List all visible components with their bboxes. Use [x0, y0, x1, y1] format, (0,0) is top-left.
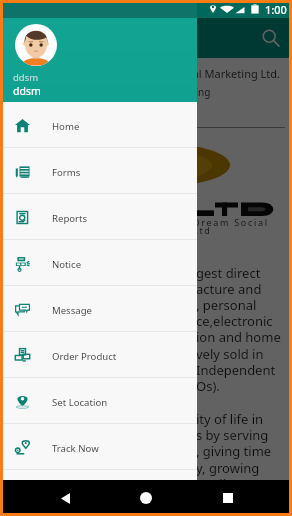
button[interactable]: Message: [0, 286, 197, 331]
button[interactable]: Track Now: [0, 424, 197, 469]
button[interactable]: Home: [0, 102, 197, 147]
staticText: , personal: [196, 296, 257, 314]
button[interactable]: Set Location: [0, 378, 197, 423]
staticText: 1:00: [265, 2, 287, 17]
staticText: ddsm: [13, 71, 39, 84]
staticText: Track Now: [52, 442, 99, 455]
staticText: y, growing: [196, 459, 260, 477]
staticText: Reports: [52, 212, 88, 225]
staticText: Dream Social: [193, 216, 269, 228]
button[interactable]: Home: [129, 481, 163, 515]
button[interactable]: Back: [48, 481, 82, 515]
button[interactable]: Recents: [211, 481, 245, 515]
staticText: , giving time: [196, 442, 272, 460]
staticText: Set Location: [52, 396, 108, 409]
staticText: ddsm: [13, 84, 41, 98]
staticText: Forms: [52, 166, 81, 179]
button[interactable]: Forms: [0, 148, 197, 193]
staticText: Marketing: [162, 85, 211, 99]
staticText: Os).: [196, 377, 220, 395]
staticText: Dream Social Marketing Ltd.: [134, 66, 281, 81]
button[interactable]: Order Product: [0, 332, 197, 377]
staticText: appliance: [196, 475, 255, 493]
button[interactable]: Reports: [0, 194, 197, 239]
staticText: gest direct: [196, 264, 261, 282]
staticText: vely sold in: [196, 345, 264, 363]
staticText: Home: [52, 120, 80, 133]
staticText: Message: [52, 304, 92, 317]
button[interactable]: Search: [256, 23, 286, 53]
button[interactable]: Notice: [0, 240, 197, 285]
staticText: Order Product: [52, 350, 117, 363]
staticText: ion and home: [196, 328, 281, 346]
staticText: Notice: [52, 258, 82, 271]
staticText: acture and: [196, 280, 262, 298]
staticText: Independent: [196, 361, 276, 379]
staticText: s by serving: [196, 426, 269, 444]
staticText: Ltd: [193, 224, 212, 236]
staticText: ce,electronic: [196, 312, 273, 330]
staticText: ity of life in: [196, 410, 264, 428]
